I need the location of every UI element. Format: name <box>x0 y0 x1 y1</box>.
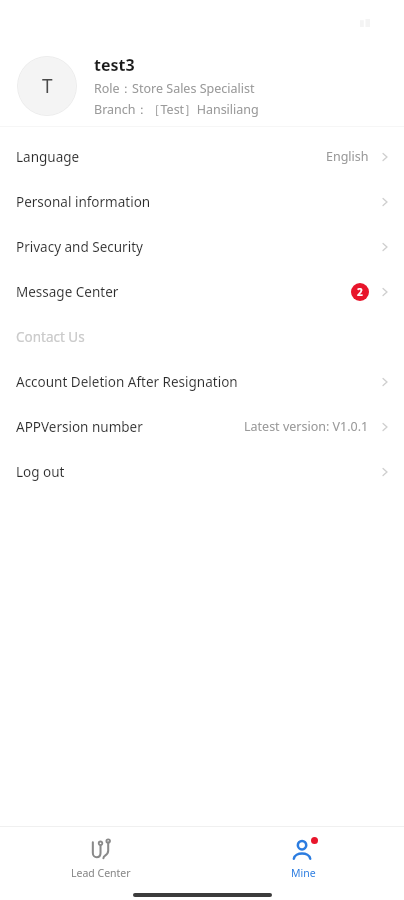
staticText: 2 <box>357 285 363 299</box>
staticText: Role：Store Sales Specialist <box>94 80 255 97</box>
staticText: Latest version: V1.0.1 <box>244 418 369 435</box>
button[interactable]: Mine <box>202 827 404 890</box>
button[interactable]: Account Deletion After Resignation <box>0 359 404 404</box>
button[interactable]: APPVersion number <box>0 404 404 449</box>
button[interactable]: Contact Us <box>0 314 404 359</box>
button[interactable]: T <box>0 45 404 126</box>
staticText: Mine <box>291 866 316 880</box>
staticText: Branch：［Test］Hansiliang <box>94 101 259 118</box>
staticText: Log out <box>16 463 65 481</box>
staticText: APPVersion number <box>16 418 143 436</box>
button[interactable]: Message Center <box>0 269 404 314</box>
staticText: T <box>42 73 53 99</box>
staticText: test3 <box>94 54 135 76</box>
button[interactable]: Privacy and Security <box>0 224 404 269</box>
button[interactable]: Personal information <box>0 179 404 224</box>
staticText: Message Center <box>16 283 119 301</box>
staticText: Contact Us <box>16 328 85 346</box>
button[interactable]: Lead Center <box>0 827 202 890</box>
staticText: Lead Center <box>71 866 131 880</box>
staticText: Privacy and Security <box>16 238 143 256</box>
staticText: Language <box>16 148 80 166</box>
button[interactable]: Language <box>0 134 404 179</box>
staticText: Account Deletion After Resignation <box>16 373 238 391</box>
staticText: Personal information <box>16 193 151 211</box>
staticText: English <box>326 148 369 165</box>
button[interactable]: Log out <box>0 449 404 494</box>
